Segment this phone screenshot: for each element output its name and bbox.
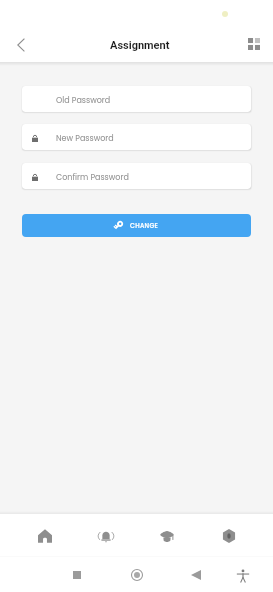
staticText: New Password [56, 133, 114, 144]
other: Accessibility [236, 569, 250, 583]
button[interactable]: Dashboard [240, 30, 268, 58]
button[interactable]: Courses [145, 520, 189, 552]
other: Home [131, 569, 143, 581]
staticText: CHANGE [130, 221, 159, 230]
button[interactable]: CHANGE [22, 214, 251, 237]
other: Back [191, 570, 201, 580]
button[interactable]: Settings [207, 520, 251, 552]
button[interactable]: New Password [22, 124, 251, 150]
staticText: Assignment [110, 39, 170, 52]
button[interactable]: Back [6, 31, 34, 59]
staticText: Confirm Password [56, 172, 129, 183]
button[interactable]: Confirm Password [22, 163, 251, 189]
staticText: Old Password [56, 95, 111, 106]
button[interactable]: Notifications [84, 520, 128, 552]
button[interactable]: Home [23, 520, 67, 552]
button[interactable]: Old Password [22, 86, 251, 112]
